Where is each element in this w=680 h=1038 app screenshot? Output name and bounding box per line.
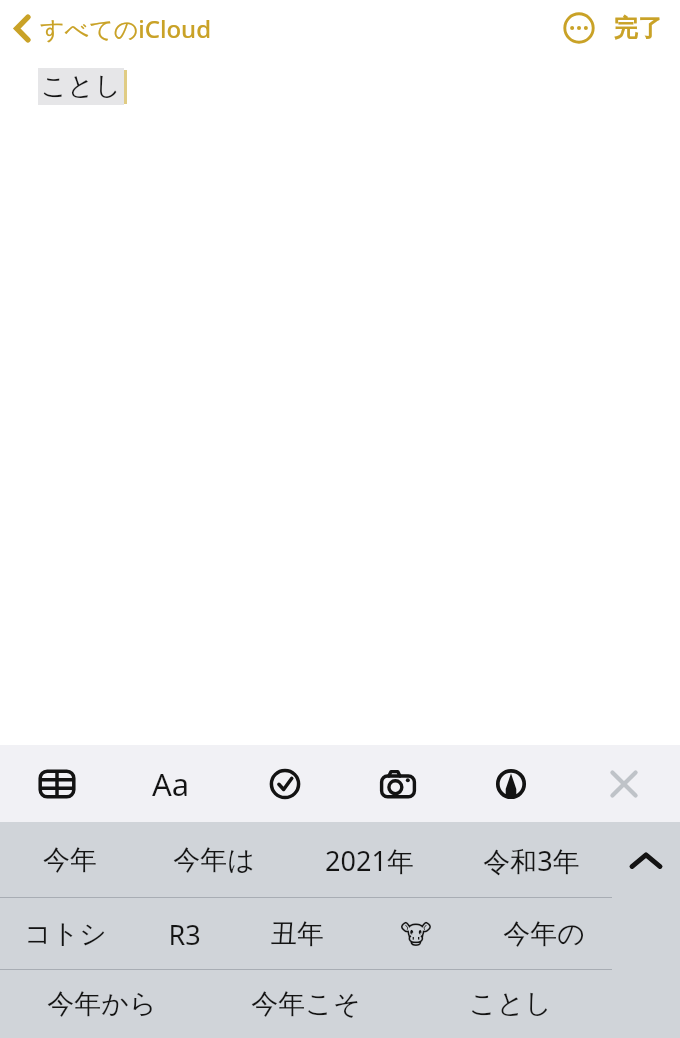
staticText: R3 (168, 916, 201, 953)
staticText: ことし (41, 70, 121, 103)
button[interactable]: コトシ (0, 898, 131, 970)
button[interactable]: すべてのiCloud (8, 8, 218, 49)
button[interactable]: 丑年 (237, 898, 356, 970)
staticText: ことし (469, 987, 552, 1021)
button[interactable]: Expand candidates (612, 822, 680, 898)
button[interactable]: 🐮 (356, 898, 475, 970)
button[interactable]: 今年は (140, 822, 288, 898)
button[interactable]: 完了 (608, 5, 668, 51)
button[interactable]: 2021年 (288, 822, 450, 898)
button[interactable]: Insert table (0, 745, 114, 822)
staticText: 今年 (43, 843, 97, 877)
button[interactable]: Markup (454, 745, 567, 822)
staticText: 今年から (47, 987, 157, 1021)
staticText: 完了 (614, 13, 662, 43)
staticText: コトシ (24, 917, 107, 951)
button[interactable]: Text format (114, 745, 228, 822)
button[interactable]: R3 (131, 898, 237, 970)
staticText: 令和3年 (483, 842, 580, 879)
staticText: 🐮 (400, 919, 432, 950)
staticText: 丑年 (270, 917, 324, 951)
button[interactable]: 今年の (475, 898, 612, 970)
staticText: 今年は (173, 843, 255, 877)
staticText: 今年こそ (251, 987, 361, 1021)
button[interactable]: Close keyboard (567, 745, 680, 822)
staticText: Aa (152, 763, 190, 805)
staticText: 2021年 (325, 842, 414, 879)
button[interactable]: Checklist (228, 745, 341, 822)
button[interactable]: Camera (341, 745, 454, 822)
button[interactable]: ことし (408, 970, 612, 1038)
staticText: すべてのiCloud (40, 12, 212, 45)
button[interactable]: More options (556, 5, 602, 51)
button[interactable]: 今年こそ (204, 970, 408, 1038)
button[interactable]: 今年から (0, 970, 204, 1038)
button[interactable]: 今年 (0, 822, 140, 898)
button[interactable]: 令和3年 (450, 822, 612, 898)
staticText: 今年の (503, 917, 585, 951)
